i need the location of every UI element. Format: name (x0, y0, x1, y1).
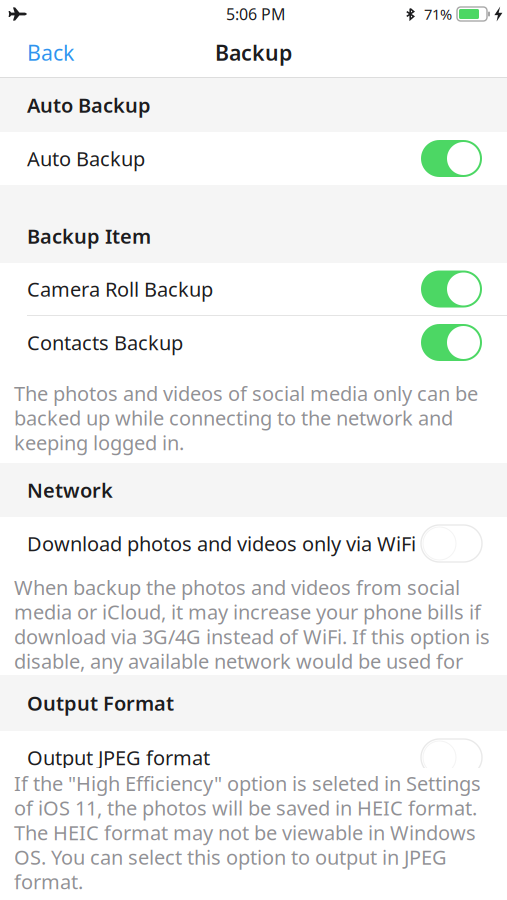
staticText: When backup the photos and videos from s… (14, 574, 490, 674)
staticText: Auto Backup (27, 145, 145, 172)
staticText: 5:06 PM (226, 3, 286, 25)
button[interactable]: Camera Roll Backup (0, 263, 507, 315)
staticText: Back (27, 38, 74, 67)
staticText: Download photos and videos only via WiFi (27, 530, 416, 557)
button[interactable]: Download photos and videos only via WiFi (0, 517, 507, 570)
staticText: Backup Item (27, 223, 151, 249)
staticText: Backup (215, 38, 292, 67)
staticText: If the "High Efficiency" option is selet… (14, 770, 481, 895)
staticText: Auto Backup (27, 92, 151, 118)
staticText: Network (27, 477, 113, 503)
button[interactable]: Auto Backup (0, 132, 507, 185)
button[interactable]: Output JPEG format (0, 731, 507, 784)
staticText: The photos and videos of social media on… (14, 380, 478, 456)
button[interactable]: Back (0, 24, 90, 81)
staticText: Contacts Backup (27, 329, 183, 356)
staticText: Output JPEG format (27, 744, 210, 771)
staticText: Camera Roll Backup (27, 276, 213, 302)
staticText: 71% (424, 4, 452, 24)
staticText: Output Format (27, 690, 174, 716)
button[interactable]: Contacts Backup (0, 316, 507, 369)
